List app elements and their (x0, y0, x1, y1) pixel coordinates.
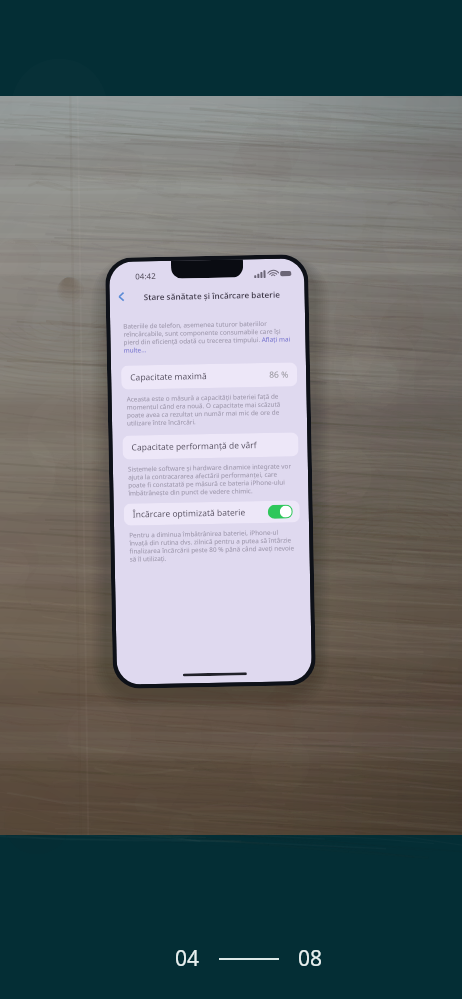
staticText: Aceasta este o măsură a capacității bate… (126, 391, 292, 428)
staticText: Încărcare optimizată baterie (133, 506, 246, 520)
button[interactable]: 04 (171, 940, 204, 977)
button[interactable]: Capacitate performanță de vârf (122, 432, 299, 460)
button[interactable]: 08 (294, 940, 327, 977)
staticText: Capacitate performanță de vârf (131, 439, 258, 453)
button[interactable]: Încărcare optimizată baterie (124, 500, 300, 526)
button[interactable]: Photo of iPhone on a wooden table (0, 96, 462, 835)
staticText: Bateriile de telefon, asemenea tuturor b… (123, 318, 293, 355)
staticText: Pentru a diminua îmbătrânirea bateriei, … (129, 527, 295, 564)
staticText: 86 % (269, 368, 288, 381)
other: Back (115, 291, 128, 303)
staticText: Sistemele software și hardware dinamice … (128, 461, 293, 498)
button[interactable]: Optimized battery charging toggle (268, 504, 293, 519)
button[interactable]: Capacitate maximă (121, 362, 297, 390)
staticText: Stare sănătate și încărcare baterie (143, 289, 281, 302)
staticText: 04:42 (135, 270, 156, 281)
staticText: Capacitate maximă (130, 370, 207, 383)
